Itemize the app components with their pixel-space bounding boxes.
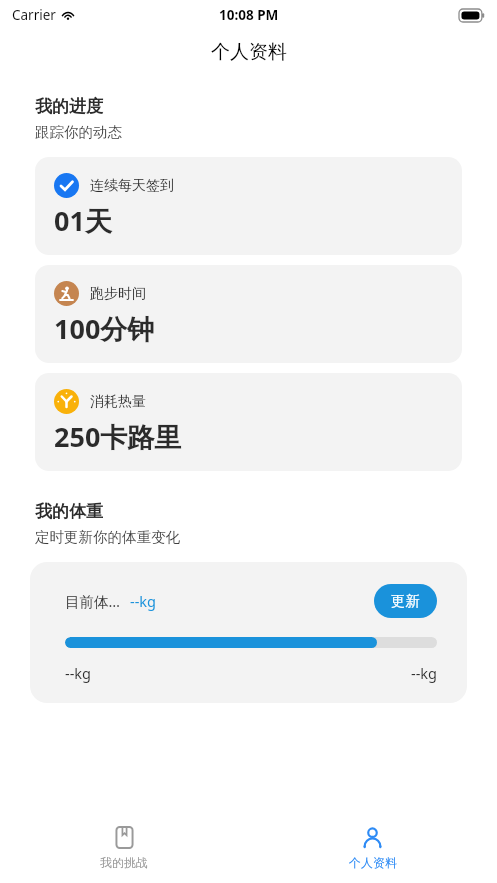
staticText: 目前体… xyxy=(65,591,120,611)
button[interactable]: 更新 xyxy=(374,584,437,618)
staticText: 10:08 PM xyxy=(219,6,279,24)
staticText: --kg xyxy=(130,591,156,611)
staticText: --kg xyxy=(65,663,91,683)
staticText: 个人资料 xyxy=(211,40,287,64)
staticText: 消耗热量 xyxy=(90,393,146,411)
button[interactable]: 个人资料 xyxy=(248,810,497,883)
staticText: 我的挑战 xyxy=(100,855,148,870)
staticText: 250卡路里 xyxy=(54,418,182,455)
staticText: 跑步时间 xyxy=(90,285,146,303)
button[interactable]: 跑步时间 xyxy=(35,265,462,363)
staticText: 连续每天签到 xyxy=(90,177,174,195)
staticText: 100分钟 xyxy=(54,310,155,347)
staticText: 01天 xyxy=(54,202,112,239)
staticText: 更新 xyxy=(391,592,420,610)
button[interactable]: 消耗热量 xyxy=(35,373,462,471)
staticText: 个人资料 xyxy=(349,855,397,870)
staticText: 跟踪你的动态 xyxy=(35,123,122,141)
staticText: --kg xyxy=(411,663,437,683)
staticText: Carrier xyxy=(12,6,56,24)
staticText: 定时更新你的体重变化 xyxy=(35,528,180,546)
staticText: 我的体重 xyxy=(35,501,103,522)
button[interactable]: 我的挑战 xyxy=(0,810,248,883)
staticText: 我的进度 xyxy=(35,96,103,117)
button[interactable]: 连续每天签到 xyxy=(35,157,462,255)
